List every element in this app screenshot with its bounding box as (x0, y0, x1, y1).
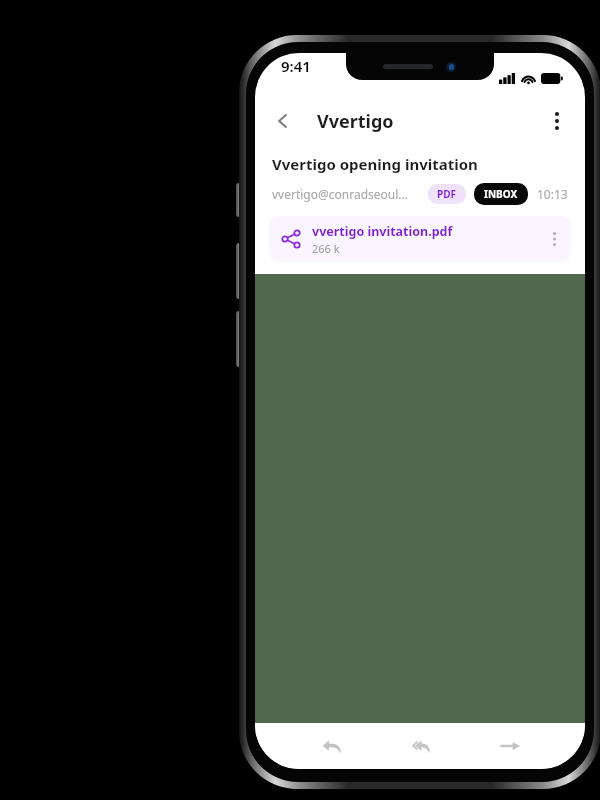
staticText: 266 k (312, 241, 340, 256)
staticText: vvertigo@conradseoul… (272, 186, 408, 202)
staticText: Vvertigo (317, 109, 394, 134)
button[interactable]: Reply (312, 726, 352, 766)
staticText: Vvertigo opening invitation (272, 154, 478, 174)
staticText: PDF (437, 187, 457, 201)
button[interactable]: Attachment options (537, 222, 571, 256)
staticText: 9:41 (281, 56, 311, 76)
staticText: vvertigo invitation.pdf (312, 223, 453, 240)
staticText: 10:13 (537, 186, 568, 202)
button[interactable]: Back (263, 101, 303, 141)
button[interactable]: More options (537, 101, 577, 141)
button[interactable]: Forward (490, 726, 530, 766)
staticText: INBOX (484, 187, 518, 201)
button[interactable]: Reply all (401, 726, 441, 766)
button[interactable]: vvertigo invitation.pdf (269, 216, 571, 262)
button[interactable]: INBOX (474, 183, 528, 205)
button[interactable]: PDF (428, 184, 466, 204)
